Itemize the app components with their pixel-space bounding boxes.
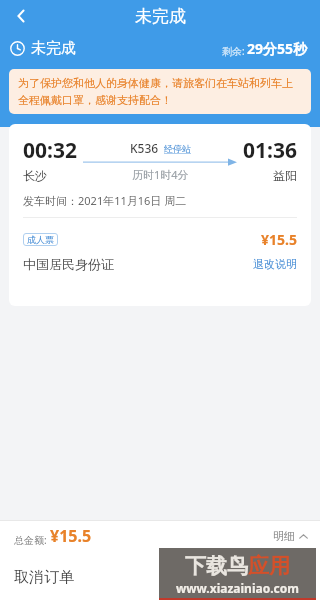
staticText: 历时1时4分 xyxy=(132,167,189,182)
staticText: 01:36 xyxy=(243,136,297,165)
staticText: K536 xyxy=(130,140,159,156)
staticText: 益阳 xyxy=(273,168,297,183)
staticText: 长沙 xyxy=(23,168,47,183)
staticText: 为了保护您和他人的身体健康，请旅客们在车站和列车上全程佩戴口罩，感谢支持配合！ xyxy=(18,76,302,107)
staticText: www.xiazainiao.com xyxy=(176,580,299,596)
staticText: 总金额: xyxy=(14,533,47,547)
button[interactable]: 退改说明 xyxy=(253,257,297,271)
staticText: 00:32 xyxy=(23,136,77,165)
staticText: 中国居民身份证 xyxy=(23,256,114,272)
button[interactable]: 经停站 xyxy=(164,143,191,154)
button[interactable]: Back xyxy=(6,1,36,31)
staticText: 未完成 xyxy=(135,6,186,27)
staticText: ¥15.5 xyxy=(261,230,297,249)
staticText: 剩余: xyxy=(222,44,245,58)
staticText: 应用 xyxy=(248,553,290,579)
staticText: ¥15.5 xyxy=(50,525,92,547)
staticText: 经停站 xyxy=(164,143,191,154)
staticText: 发车时间：2021年11月16日 周二 xyxy=(23,193,187,208)
staticText: 成人票 xyxy=(27,234,54,245)
staticText: 下载鸟 xyxy=(185,553,248,579)
staticText: 明细 xyxy=(273,529,295,543)
staticText: 取消订单 xyxy=(14,568,74,587)
staticText: 退改说明 xyxy=(253,257,297,271)
button[interactable]: 明细 xyxy=(273,529,308,543)
staticText: 29分55秒 xyxy=(247,39,308,58)
staticText: 未完成 xyxy=(31,39,76,58)
button[interactable]: 取消订单 xyxy=(0,551,160,603)
